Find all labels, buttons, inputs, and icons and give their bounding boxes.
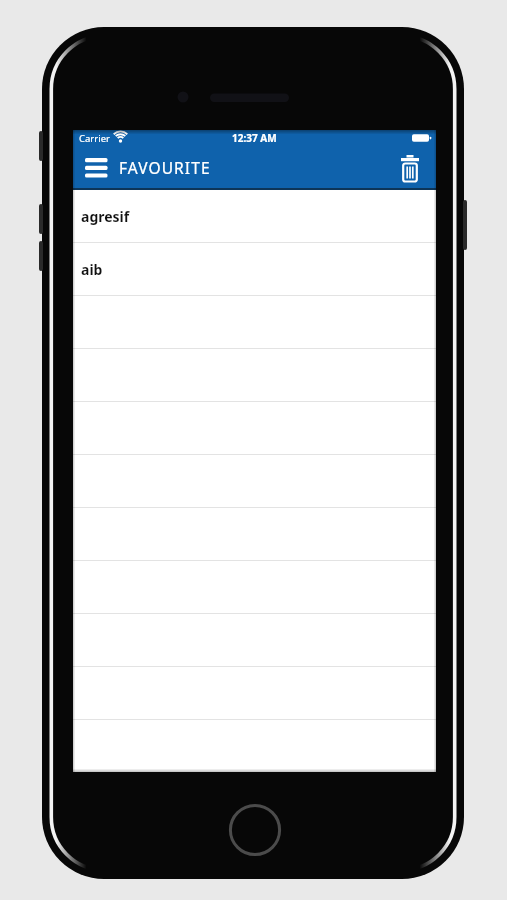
button[interactable] [73, 455, 436, 507]
button[interactable] [73, 296, 436, 348]
button[interactable] [397, 153, 423, 183]
button[interactable] [73, 614, 436, 666]
button[interactable]: agresif [73, 190, 436, 242]
button[interactable] [73, 508, 436, 560]
staticText: aib [81, 260, 103, 279]
button[interactable]: aib [73, 243, 436, 295]
button[interactable] [73, 561, 436, 613]
button[interactable] [73, 402, 436, 454]
button[interactable] [73, 720, 436, 772]
button[interactable] [73, 349, 436, 401]
staticText: agresif [81, 207, 130, 226]
staticText: Carrier [79, 132, 110, 145]
button[interactable] [73, 667, 436, 719]
staticText: 12:37 AM [232, 131, 277, 145]
button[interactable] [81, 154, 111, 182]
staticText: FAVOURITE [119, 157, 211, 178]
